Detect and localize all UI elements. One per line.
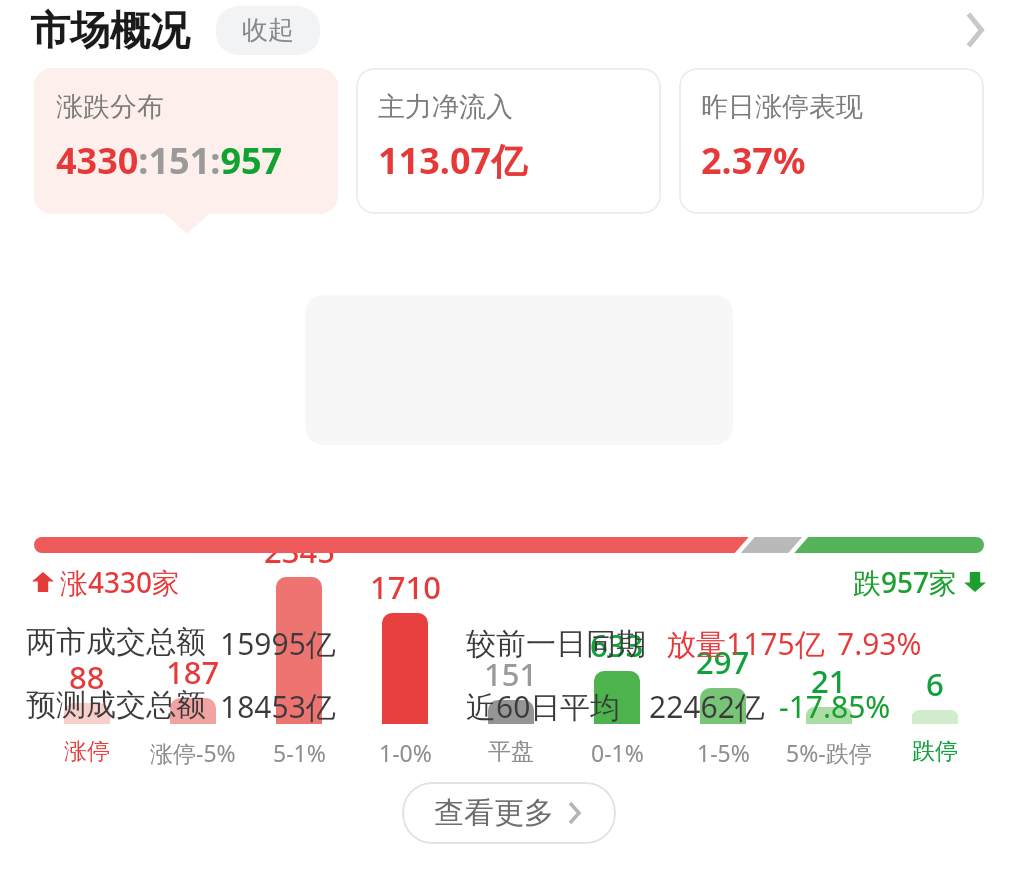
staticText: 平盘	[488, 737, 534, 766]
staticText: 涨4330家	[60, 563, 181, 601]
staticText: 2345	[264, 530, 335, 572]
staticText: 1710	[370, 566, 441, 608]
staticText: 跌停	[912, 737, 958, 766]
button[interactable]: 涨跌分布	[34, 68, 338, 214]
staticText: 187	[166, 651, 220, 693]
staticText: 较前一日同期	[466, 625, 646, 663]
staticText: 查看更多	[434, 794, 554, 832]
staticText: 放量1175亿	[666, 623, 825, 664]
staticText: 297	[696, 641, 750, 683]
staticText: 88	[69, 656, 105, 698]
staticText: 两市成交总额	[26, 623, 206, 661]
staticText: 涨跌分布	[56, 90, 164, 124]
staticText: 1-5%	[697, 737, 750, 768]
staticText: 预测成交总额	[26, 686, 206, 724]
button[interactable]: 主力净流入	[356, 68, 661, 214]
button[interactable]: 查看更多	[402, 782, 616, 844]
staticText: 4330:151:957	[56, 136, 283, 185]
staticText: 633	[590, 624, 644, 666]
staticText: 5-1%	[273, 737, 326, 768]
staticText: 0-1%	[591, 737, 644, 768]
staticText: 近60日平均	[466, 686, 621, 727]
staticText: 151	[484, 653, 538, 695]
button[interactable]: More	[948, 4, 1000, 56]
staticText: 市场概况	[30, 5, 190, 55]
staticText: 15995亿	[220, 623, 336, 664]
staticText: 跌957家	[853, 563, 958, 601]
staticText: 21	[811, 660, 847, 702]
staticText: 22462亿	[649, 686, 765, 727]
staticText: 2.37%	[701, 136, 806, 185]
button[interactable]: 昨日涨停表现	[679, 68, 984, 214]
staticText: 5%-跌停	[786, 737, 872, 768]
staticText: 收起	[242, 14, 294, 47]
staticText: 涨停	[64, 737, 110, 766]
staticText: 113.07亿	[378, 136, 528, 185]
staticText: 18453亿	[220, 686, 336, 727]
staticText: 6	[926, 663, 944, 705]
button[interactable]: 收起	[216, 6, 320, 55]
staticText: -17.85%	[779, 686, 891, 727]
staticText: 7.93%	[837, 623, 922, 664]
staticText: 昨日涨停表现	[701, 90, 863, 124]
staticText: 涨停-5%	[150, 737, 236, 768]
staticText: 1-0%	[379, 737, 432, 768]
staticText: 主力净流入	[378, 90, 513, 124]
